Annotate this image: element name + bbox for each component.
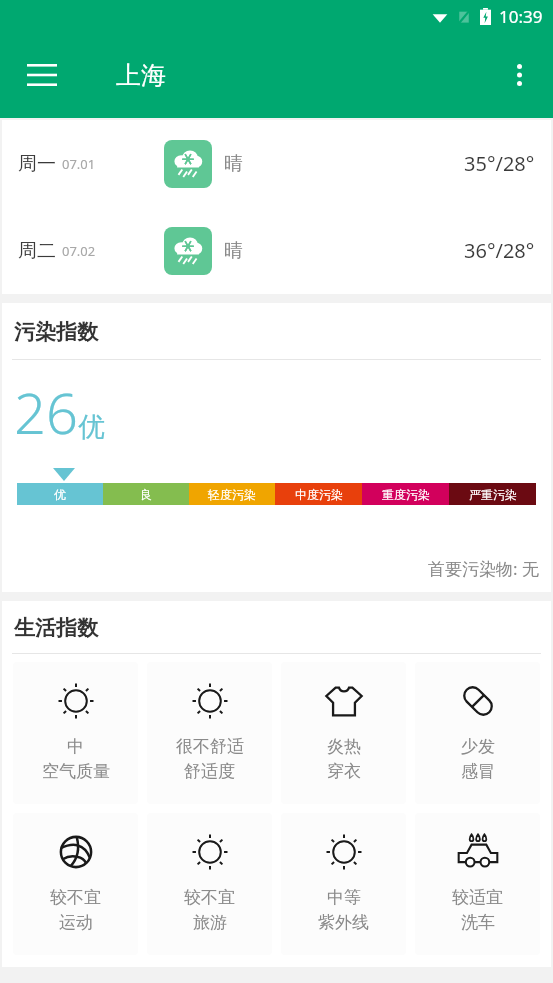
staticText: 35°/28°	[464, 150, 535, 177]
staticText: 较不宜	[184, 887, 235, 908]
staticText: 首要污染物: 无	[428, 557, 539, 580]
staticText: 36°/28°	[464, 237, 535, 264]
staticText: 炎热	[327, 736, 361, 757]
staticText: 较不宜	[50, 887, 101, 908]
staticText: 周一	[18, 152, 56, 176]
staticText: 上海	[116, 60, 166, 91]
staticText: 周二	[18, 239, 56, 263]
button[interactable]: More options	[493, 49, 545, 101]
button[interactable]: 中	[13, 662, 138, 804]
staticText: 舒适度	[184, 761, 235, 782]
button[interactable]: 少发	[415, 662, 540, 804]
staticText: 严重污染	[469, 487, 517, 502]
button[interactable]: 较不宜	[147, 813, 272, 955]
staticText: 重度污染	[382, 487, 430, 502]
staticText: 晴	[224, 239, 243, 263]
button[interactable]: 炎热	[281, 662, 406, 804]
staticText: 较适宜	[452, 887, 503, 908]
button[interactable]: 很不舒适	[147, 662, 272, 804]
staticText: 中等	[327, 887, 361, 908]
staticText: 洗车	[461, 912, 495, 933]
staticText: 少发	[461, 736, 495, 757]
button[interactable]: 周一	[2, 120, 551, 207]
staticText: 26	[14, 374, 78, 450]
staticText: 感冒	[461, 761, 495, 782]
staticText: 生活指数	[14, 615, 98, 641]
staticText: 运动	[59, 912, 93, 933]
staticText: 污染指数	[14, 319, 98, 345]
button[interactable]: Menu	[14, 47, 70, 103]
button[interactable]: 中等	[281, 813, 406, 955]
staticText: 很不舒适	[176, 736, 244, 757]
staticText: 优	[78, 410, 105, 444]
staticText: 中度污染	[295, 487, 343, 502]
staticText: 晴	[224, 152, 243, 176]
staticText: 穿衣	[327, 761, 361, 782]
staticText: 07.01	[62, 155, 96, 173]
staticText: 中	[67, 736, 84, 757]
staticText: 空气质量	[42, 761, 110, 782]
button[interactable]: 较不宜	[13, 813, 138, 955]
staticText: 紫外线	[318, 912, 369, 933]
button[interactable]: 周二	[2, 207, 551, 294]
staticText: 旅游	[193, 912, 227, 933]
staticText: 良	[140, 487, 152, 502]
staticText: 10:39	[499, 5, 543, 28]
staticText: 07.02	[62, 242, 96, 260]
button[interactable]: 较适宜	[415, 813, 540, 955]
staticText: 轻度污染	[208, 487, 256, 502]
staticText: 优	[54, 487, 66, 502]
